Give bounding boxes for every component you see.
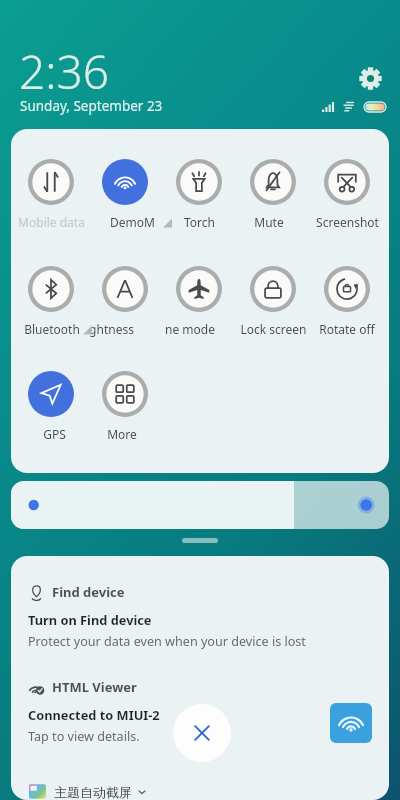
button[interactable]: 主题自动截屏 xyxy=(29,783,147,800)
staticText: Protect your data even when your device … xyxy=(28,633,306,650)
staticText: Mobile data xyxy=(18,214,85,230)
staticText: Find device xyxy=(52,583,125,601)
button[interactable]: HTML Viewer xyxy=(29,678,137,696)
staticText: Tap to view details. xyxy=(28,728,140,745)
button[interactable]: Lock screen xyxy=(236,246,310,337)
button[interactable]: ghtness xyxy=(88,246,162,337)
staticText: GPS xyxy=(43,426,66,442)
staticText: Turn on Find device xyxy=(28,611,152,628)
staticText: Torch xyxy=(184,214,215,230)
staticText: Lock screen xyxy=(240,321,307,337)
staticText: ne mode xyxy=(165,321,215,337)
staticText: ghtness xyxy=(89,321,134,337)
staticText: Screenshot xyxy=(316,214,379,230)
staticText: Bluetooth xyxy=(24,321,80,337)
staticText: Connected to MIUI-2 xyxy=(28,706,160,723)
button[interactable]: Wi-Fi notification xyxy=(330,703,372,743)
button[interactable]: Torch xyxy=(162,140,236,230)
button[interactable]: More xyxy=(88,351,162,442)
staticText: Rotate off xyxy=(319,321,375,337)
staticText: Mute xyxy=(254,214,284,230)
button[interactable]: Mobile data xyxy=(14,140,88,230)
button[interactable]: Settings xyxy=(356,64,384,92)
button[interactable] xyxy=(11,481,389,529)
staticText: Sunday, September 23 xyxy=(20,97,163,115)
button[interactable]: Close xyxy=(173,704,231,762)
button[interactable]: Bluetooth xyxy=(14,246,88,337)
button[interactable]: DemoM xyxy=(88,140,162,230)
staticText: DemoM xyxy=(110,214,155,230)
button[interactable]: GPS xyxy=(14,351,88,442)
staticText: 主题自动截屏 xyxy=(54,784,132,800)
staticText: 2:36 xyxy=(19,40,110,103)
button[interactable]: Mute xyxy=(236,140,310,230)
button[interactable]: ne mode xyxy=(162,246,236,337)
staticText: HTML Viewer xyxy=(52,678,137,696)
button[interactable]: Rotate off xyxy=(310,246,384,337)
button[interactable]: Screenshot xyxy=(310,140,384,230)
button[interactable]: Find device xyxy=(29,583,125,601)
staticText: More xyxy=(107,426,137,442)
